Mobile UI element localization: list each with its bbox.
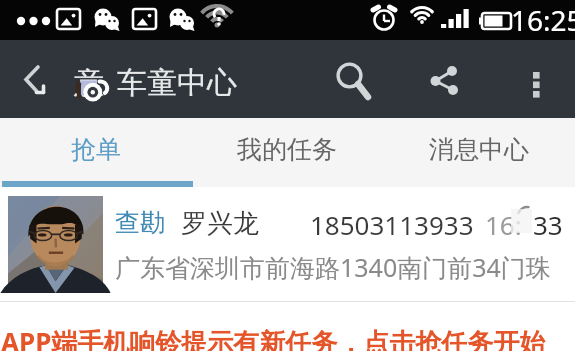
staticText: 33 — [533, 207, 563, 242]
staticText: 查勘 — [115, 207, 165, 238]
staticText: 16:25 — [511, 1, 575, 39]
staticText: APP端手机响铃提示有新任务，点击抢任务开始 — [1, 324, 546, 351]
staticText: 罗兴龙 — [181, 207, 259, 240]
button[interactable]: 消息中心 — [383, 118, 575, 181]
button[interactable]: Back — [16, 59, 56, 99]
button[interactable]: Search — [326, 52, 374, 100]
button[interactable]: 我的任务 — [191, 118, 383, 181]
staticText: 意 — [74, 64, 104, 102]
staticText: 16: — [485, 207, 522, 242]
button[interactable]: Share — [425, 59, 465, 99]
button[interactable]: 查勘 — [0, 187, 575, 301]
button[interactable]: More options — [520, 61, 556, 97]
staticText: 18503113933 — [310, 207, 474, 242]
button[interactable]: 抢单 — [0, 118, 191, 181]
staticText: 车童中心 — [117, 64, 237, 102]
staticText: 我的任务 — [237, 134, 337, 165]
staticText: 消息中心 — [429, 134, 529, 165]
staticText: 抢单 — [71, 134, 121, 165]
staticText: 广东省深圳市前海路1340南门前34门珠 — [115, 250, 551, 284]
